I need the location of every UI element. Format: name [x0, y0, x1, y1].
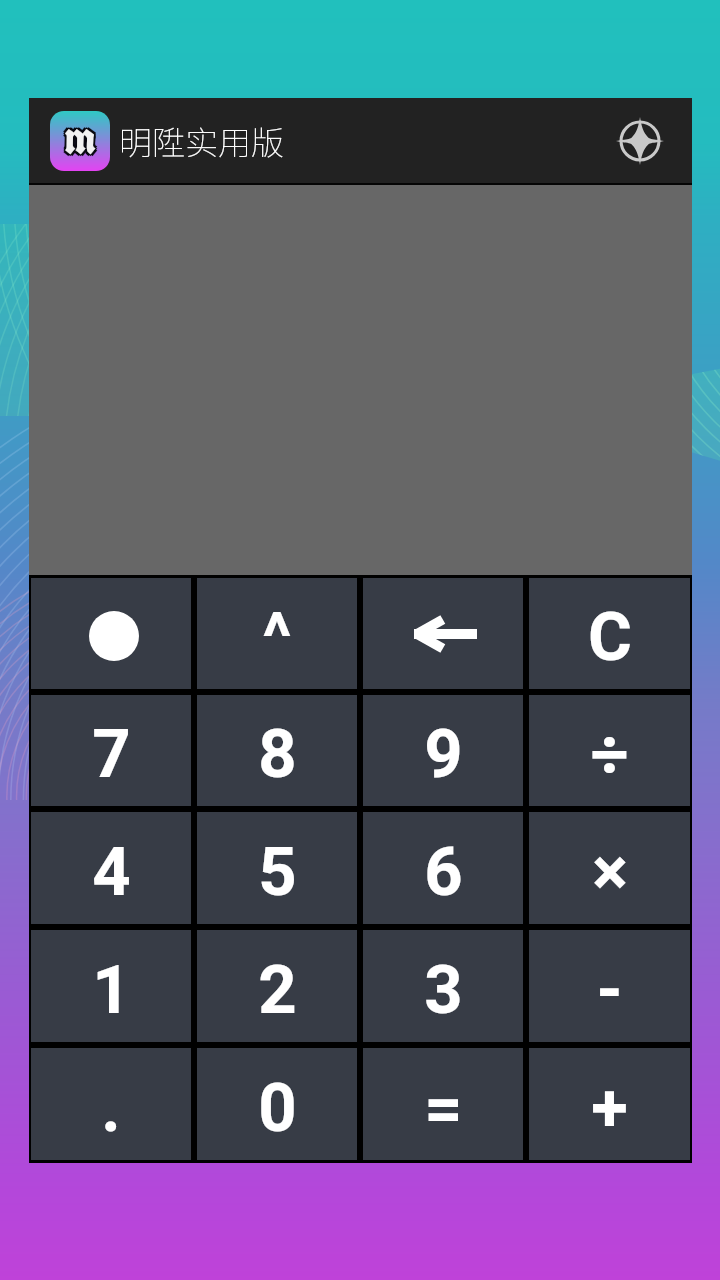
staticText: +	[591, 1069, 628, 1148]
staticText: ×	[592, 833, 628, 912]
staticText: ÷	[590, 715, 629, 794]
staticText: 0	[258, 1069, 297, 1148]
staticText: 6	[424, 833, 463, 912]
staticText: -	[596, 951, 623, 1030]
staticText: .	[101, 1069, 121, 1148]
staticText: m	[66, 111, 99, 163]
staticText: =	[424, 1069, 463, 1148]
staticText: m	[62, 111, 95, 163]
staticText: ^	[262, 598, 292, 677]
button[interactable]: 2	[197, 930, 357, 1042]
button[interactable]: Divide	[529, 695, 690, 806]
staticText: 5	[258, 833, 297, 912]
staticText: 7	[92, 715, 131, 794]
button[interactable]: 7	[31, 695, 191, 806]
staticText: m	[66, 111, 99, 167]
staticText: m	[64, 111, 97, 165]
staticText: 9	[424, 715, 463, 794]
staticText: m	[62, 111, 95, 165]
button[interactable]: Multiply	[529, 812, 690, 924]
button[interactable]: Backspace	[363, 578, 523, 689]
button[interactable]: 9	[363, 695, 523, 806]
button[interactable]: Compass	[607, 108, 673, 174]
button[interactable]: Record	[31, 578, 191, 689]
staticText: m	[64, 111, 97, 163]
button[interactable]: Equals	[363, 1048, 523, 1160]
button[interactable]: 3	[363, 930, 523, 1042]
other: Record	[89, 611, 139, 661]
staticText: m	[64, 111, 97, 167]
button[interactable]: Decimal point	[31, 1048, 191, 1160]
button[interactable]: Power	[197, 578, 357, 689]
button[interactable]: 1	[31, 930, 191, 1042]
button[interactable]: Minus	[529, 930, 690, 1042]
button[interactable]: 8	[197, 695, 357, 806]
button[interactable]: 4	[31, 812, 191, 924]
button[interactable]: 0	[197, 1048, 357, 1160]
other: Backspace	[414, 615, 477, 653]
staticText: 8	[258, 715, 297, 794]
button[interactable]: 6	[363, 812, 523, 924]
staticText: C	[588, 598, 632, 677]
staticText: 2	[258, 951, 297, 1030]
button[interactable]: 5	[197, 812, 357, 924]
button[interactable]: Clear	[529, 578, 690, 689]
staticText: 明陞实用版	[119, 117, 284, 165]
staticText: 4	[92, 833, 131, 912]
staticText: m	[66, 111, 99, 165]
staticText: 1	[92, 951, 131, 1030]
staticText: m	[62, 111, 95, 167]
staticText: 3	[424, 951, 463, 1030]
button[interactable]: Plus	[529, 1048, 690, 1160]
